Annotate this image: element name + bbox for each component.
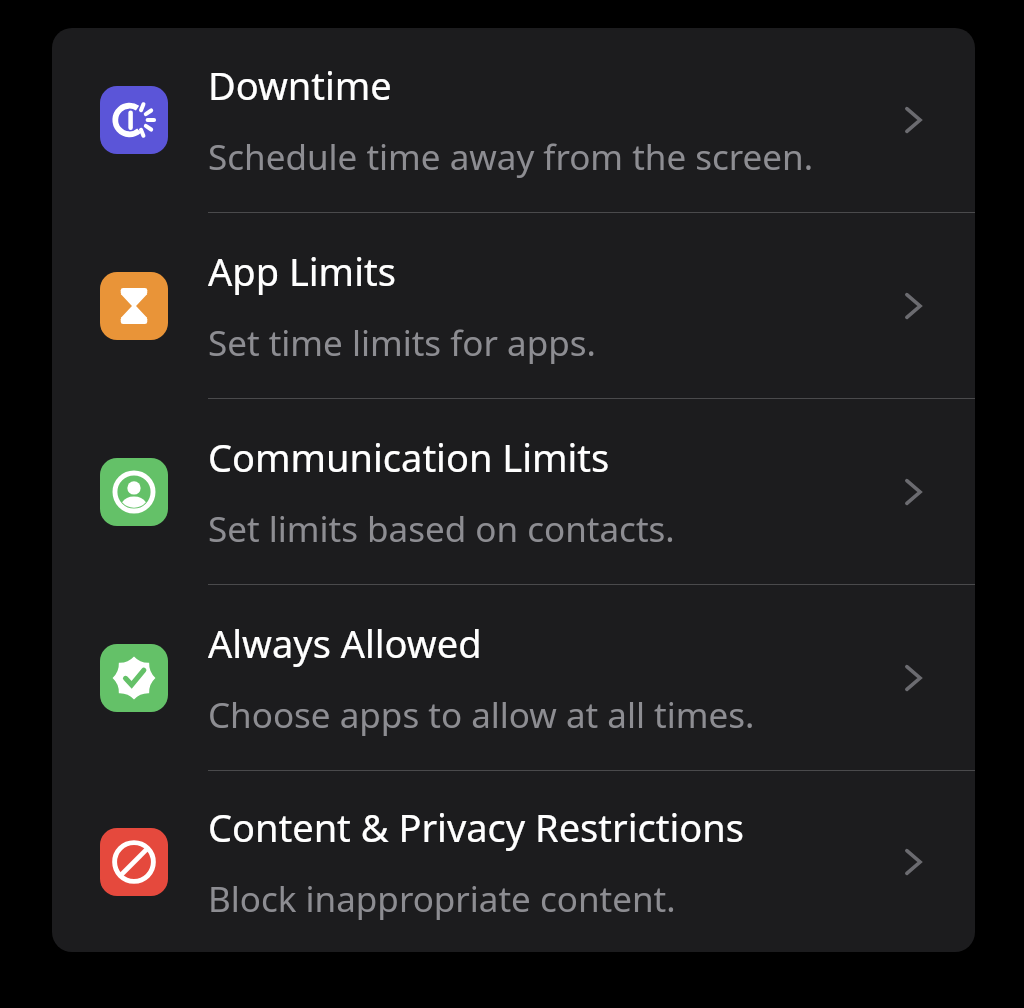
staticText: Communication Limits [208, 431, 610, 483]
other: Open Downtime [885, 92, 941, 148]
staticText: Schedule time away from the screen. [208, 133, 814, 181]
button[interactable]: Communication Limits [52, 399, 975, 584]
staticText: Set time limits for apps. [208, 319, 596, 367]
other: Open Content & Privacy Restrictions [885, 834, 941, 890]
button[interactable]: Downtime [52, 28, 975, 212]
button[interactable]: App Limits [52, 213, 975, 398]
staticText: App Limits [208, 245, 396, 297]
button[interactable]: Always Allowed [52, 585, 975, 770]
other: Open Communication Limits [885, 464, 941, 520]
staticText: Set limits based on contacts. [208, 505, 675, 553]
staticText: Always Allowed [208, 617, 482, 669]
staticText: Content & Privacy Restrictions [208, 801, 744, 853]
other: Open App Limits [885, 278, 941, 334]
staticText: Choose apps to allow at all times. [208, 691, 755, 739]
staticText: Block inappropriate content. [208, 875, 676, 923]
other: Open Always Allowed [885, 650, 941, 706]
button[interactable]: Content & Privacy Restrictions [52, 771, 975, 952]
staticText: Downtime [208, 59, 392, 111]
